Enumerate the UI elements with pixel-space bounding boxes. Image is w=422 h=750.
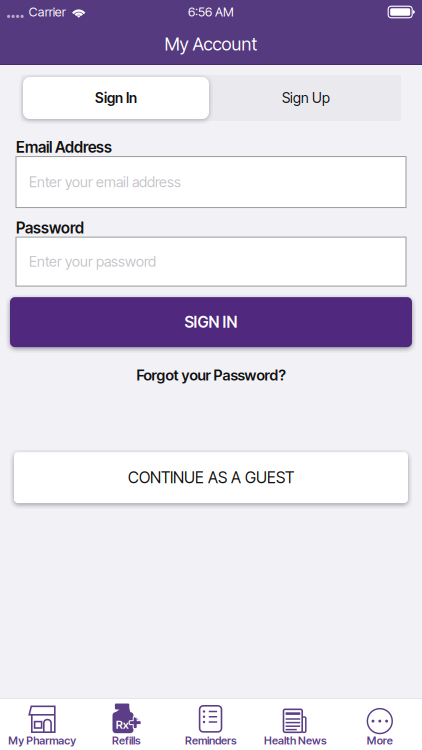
staticText: SIGN IN: [184, 313, 237, 331]
staticText: Rx: [116, 718, 129, 731]
staticText: 6:56 AM: [188, 4, 234, 20]
staticText: Carrier: [29, 4, 66, 20]
staticText: Refills: [112, 734, 141, 747]
staticText: Reminders: [185, 734, 237, 747]
button[interactable]: CONTINUE AS A GUEST: [14, 452, 408, 503]
button[interactable]: Enter your email address: [16, 157, 406, 208]
staticText: Enter your password: [29, 253, 156, 270]
staticText: Forgot your Password?: [136, 366, 285, 384]
staticText: Enter your email address: [29, 173, 181, 191]
staticText: More: [367, 734, 393, 747]
staticText: CONTINUE AS A GUEST: [128, 468, 294, 487]
button[interactable]: Sign Up: [211, 75, 401, 121]
button[interactable]: SIGN IN: [10, 297, 412, 347]
staticText: Sign In: [95, 89, 137, 106]
button[interactable]: Enter your password: [16, 237, 406, 286]
staticText: Sign Up: [282, 89, 330, 106]
button[interactable]: Health News: [253, 699, 338, 750]
button[interactable]: Sign In: [21, 75, 211, 121]
staticText: Email Address: [16, 138, 112, 157]
staticText: My Account: [164, 33, 257, 55]
button[interactable]: More: [338, 699, 422, 750]
staticText: Password: [16, 219, 84, 237]
button[interactable]: Forgot your Password?: [136, 360, 285, 390]
button[interactable]: My Pharmacy: [0, 699, 84, 750]
staticText: My Pharmacy: [8, 734, 76, 747]
staticText: Health News: [264, 734, 327, 747]
button[interactable]: Reminders: [169, 699, 253, 750]
button[interactable]: Rx: [84, 699, 169, 750]
